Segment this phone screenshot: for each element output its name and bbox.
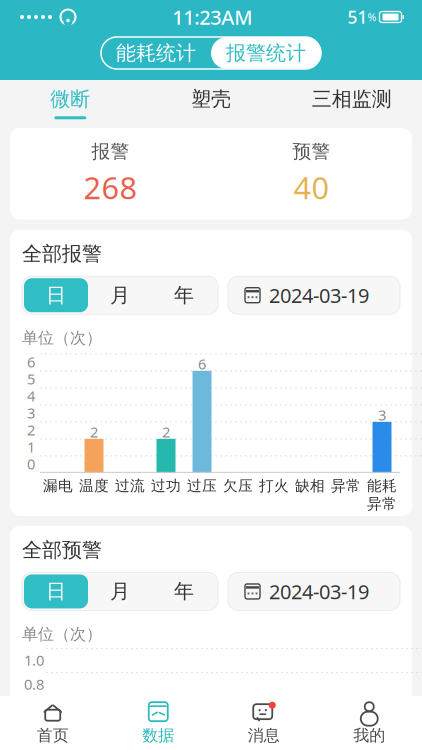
button[interactable]: 报警统计 bbox=[211, 37, 321, 69]
staticText: 1.0 bbox=[24, 650, 44, 670]
staticText: 月 bbox=[110, 579, 130, 604]
button[interactable]: 首页 bbox=[0, 696, 105, 750]
staticText: 我的 bbox=[353, 726, 385, 745]
button[interactable]: 数据 bbox=[105, 696, 211, 750]
staticText: 日 bbox=[46, 283, 66, 307]
staticText: 能耗 bbox=[367, 477, 397, 495]
staticText: 年 bbox=[174, 579, 194, 604]
staticText: 2024-03-19 bbox=[269, 578, 369, 605]
staticText: 1 bbox=[27, 437, 35, 457]
button[interactable]: 日 bbox=[24, 278, 88, 312]
staticText: 0.6 bbox=[24, 698, 44, 718]
staticText: 全部预警 bbox=[22, 538, 102, 562]
staticText: 40 bbox=[293, 167, 329, 208]
staticText: 0.8 bbox=[24, 674, 44, 694]
staticText: 2 bbox=[162, 422, 170, 442]
staticText: 5 bbox=[27, 369, 35, 389]
staticText: 欠压 bbox=[223, 477, 253, 495]
button[interactable]: 塑壳 bbox=[141, 80, 281, 126]
button[interactable]: 三相监测 bbox=[281, 80, 422, 126]
button[interactable]: 微断 bbox=[0, 80, 141, 126]
button[interactable]: 年 bbox=[152, 574, 216, 608]
staticText: 11:23AM bbox=[172, 4, 252, 30]
staticText: 漏电 bbox=[43, 477, 73, 495]
staticText: 6 bbox=[27, 352, 35, 372]
button[interactable]: 能耗统计 bbox=[101, 37, 211, 69]
staticText: 3 bbox=[27, 403, 35, 423]
staticText: 日 bbox=[46, 579, 66, 604]
staticText: 单位（次） bbox=[22, 328, 102, 348]
button[interactable]: 我的 bbox=[316, 696, 422, 750]
staticText: 三相监测 bbox=[312, 87, 392, 111]
staticText: 微断 bbox=[50, 87, 90, 111]
staticText: % bbox=[367, 10, 376, 24]
staticText: 首页 bbox=[37, 726, 69, 745]
staticText: 打火 bbox=[259, 477, 289, 495]
staticText: 月 bbox=[110, 283, 130, 307]
staticText: 温度 bbox=[79, 477, 109, 495]
staticText: 报警 bbox=[91, 140, 129, 163]
staticText: 报警统计 bbox=[226, 41, 306, 65]
staticText: 过压 bbox=[187, 477, 217, 495]
staticText: 能耗统计 bbox=[116, 41, 196, 65]
staticText: 1 bbox=[166, 691, 174, 711]
staticText: 全部报警 bbox=[22, 242, 102, 266]
button[interactable]: 月 bbox=[88, 574, 152, 608]
staticText: 2 bbox=[27, 420, 35, 440]
button[interactable]: 2024-03-19 bbox=[228, 276, 400, 314]
staticText: 数据 bbox=[142, 726, 174, 745]
staticText: 268 bbox=[83, 167, 137, 208]
staticText: 消息 bbox=[248, 726, 280, 745]
staticText: 年 bbox=[174, 283, 194, 307]
staticText: 塑壳 bbox=[191, 87, 231, 111]
staticText: 51 bbox=[347, 5, 367, 28]
staticText: 2024-03-19 bbox=[269, 282, 369, 308]
button[interactable]: 月 bbox=[88, 278, 152, 312]
staticText: 2 bbox=[90, 422, 98, 442]
staticText: 异常 bbox=[331, 477, 361, 495]
staticText: 预警 bbox=[292, 140, 330, 163]
button[interactable]: 2024-03-19 bbox=[228, 572, 400, 610]
button[interactable]: 消息 bbox=[211, 696, 316, 750]
staticText: 过功 bbox=[151, 477, 181, 495]
staticText: 6 bbox=[198, 354, 206, 374]
button[interactable]: 年 bbox=[152, 278, 216, 312]
staticText: 缺相 bbox=[295, 477, 325, 495]
staticText: 过流 bbox=[115, 477, 145, 495]
staticText: 单位（次） bbox=[22, 624, 102, 644]
staticText: 0 bbox=[27, 454, 35, 474]
button[interactable]: 日 bbox=[24, 574, 88, 608]
staticText: 3 bbox=[378, 405, 386, 425]
staticText: 异常 bbox=[367, 495, 397, 513]
staticText: 4 bbox=[27, 386, 35, 406]
